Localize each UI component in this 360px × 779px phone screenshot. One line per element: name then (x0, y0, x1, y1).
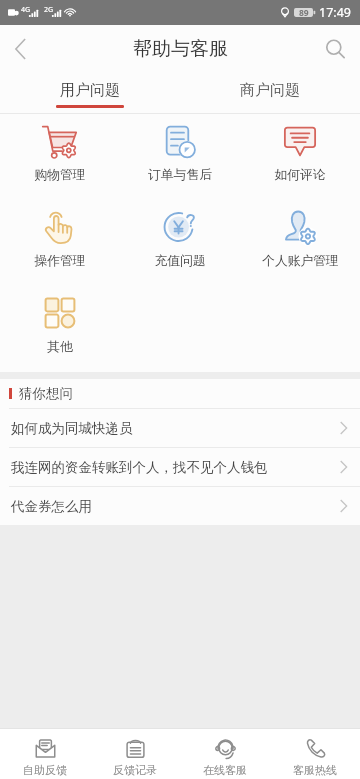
button[interactable]: 我连网的资金转账到个人，找不见个人钱包 (0, 448, 360, 486)
staticText: 自助反馈 (23, 763, 67, 777)
staticText: 89 (299, 7, 309, 19)
staticText: 操作管理 (34, 253, 86, 269)
button[interactable]: 反馈记录 (90, 729, 180, 779)
button[interactable]: 在线客服 (180, 729, 270, 779)
staticText: 帮助与客服 (133, 37, 228, 61)
staticText: 17:49 (319, 4, 351, 21)
staticText: 其他 (47, 339, 73, 355)
staticText: 2G (44, 5, 54, 15)
staticText: 如何评论 (274, 167, 326, 183)
button[interactable]: 自助反馈 (0, 729, 90, 779)
staticText: 商户问题 (240, 81, 300, 100)
button[interactable]: Search (316, 25, 360, 72)
staticText: 我连网的资金转账到个人，找不见个人钱包 (11, 459, 268, 476)
staticText: 购物管理 (34, 167, 86, 183)
button[interactable]: 其他 (0, 286, 120, 372)
staticText: 反馈记录 (113, 763, 157, 777)
button[interactable]: 如何成为同城快递员 (0, 409, 360, 447)
staticText: 猜你想问 (19, 385, 73, 402)
button[interactable]: 个人账户管理 (240, 200, 360, 286)
staticText: 客服热线 (293, 763, 337, 777)
button[interactable]: 商户问题 (180, 72, 360, 113)
staticText: 个人账户管理 (262, 253, 339, 269)
button[interactable]: Back (0, 25, 44, 72)
staticText: 4G (21, 5, 31, 15)
button[interactable]: 订单与售后 (120, 114, 240, 200)
button[interactable]: 如何评论 (240, 114, 360, 200)
staticText: 充值问题 (154, 253, 206, 269)
button[interactable]: 充值问题 (120, 200, 240, 286)
staticText: 代金券怎么用 (11, 498, 92, 515)
button[interactable]: 操作管理 (0, 200, 120, 286)
staticText: 订单与售后 (148, 167, 212, 183)
button[interactable]: 购物管理 (0, 114, 120, 200)
button[interactable]: 用户问题 (0, 72, 180, 113)
button[interactable]: 代金券怎么用 (0, 487, 360, 525)
staticText: 在线客服 (203, 763, 247, 777)
staticText: 如何成为同城快递员 (11, 420, 133, 437)
staticText: 用户问题 (60, 81, 120, 100)
button[interactable]: 客服热线 (270, 729, 360, 779)
